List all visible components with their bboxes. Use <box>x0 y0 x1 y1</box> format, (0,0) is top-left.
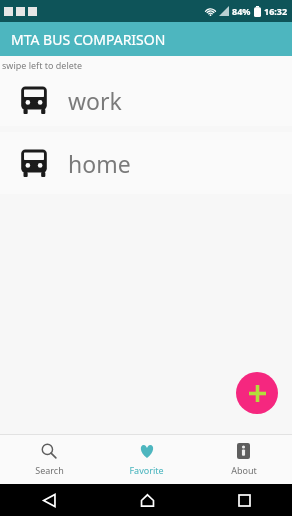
staticText: swipe left to delete <box>2 59 83 71</box>
staticText: 16:32 <box>264 5 288 17</box>
button[interactable]: About <box>195 435 292 484</box>
staticText: home <box>68 148 131 179</box>
button[interactable]: Add bus route <box>236 372 278 414</box>
button[interactable]: Recent apps <box>232 488 256 512</box>
button[interactable]: Search <box>0 435 98 484</box>
staticText: MTA BUS COMPARISON <box>11 30 166 49</box>
button[interactable]: Back <box>37 488 61 512</box>
staticText: Favorite <box>129 464 164 476</box>
button[interactable]: Favorite <box>98 435 195 484</box>
button[interactable]: work <box>0 74 292 126</box>
staticText: About <box>231 464 257 476</box>
staticText: Search <box>35 464 64 476</box>
staticText: work <box>68 85 122 116</box>
button[interactable]: Home <box>135 488 159 512</box>
staticText: 84% <box>232 5 251 17</box>
button[interactable]: home <box>0 132 292 194</box>
